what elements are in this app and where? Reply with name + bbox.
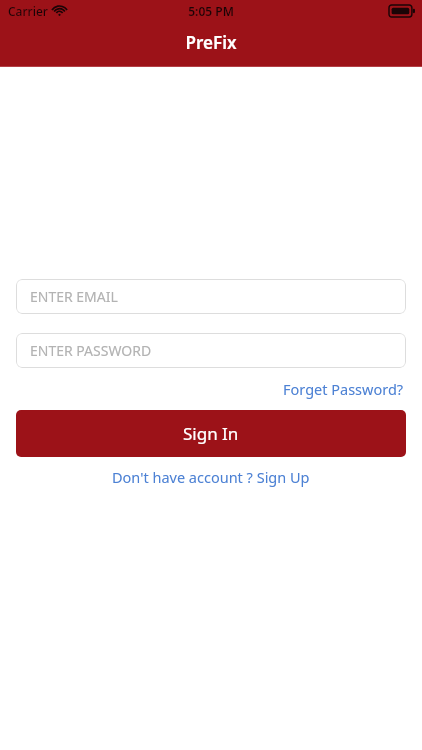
staticText: PreFix: [0, 31, 422, 54]
button[interactable]: ENTER EMAIL: [16, 279, 406, 314]
staticText: Don't have account ? Sign Up: [112, 467, 310, 487]
staticText: Carrier: [8, 3, 48, 19]
button[interactable]: Don't have account ? Sign Up: [106, 464, 316, 490]
staticText: 5:05 PM: [0, 3, 422, 19]
staticText: ENTER PASSWORD: [30, 341, 152, 360]
staticText: Sign In: [183, 422, 239, 445]
button[interactable]: ENTER PASSWORD: [16, 333, 406, 368]
button[interactable]: Sign In: [16, 410, 406, 457]
button[interactable]: Forget Password?: [281, 377, 406, 401]
staticText: Forget Password?: [283, 379, 404, 399]
staticText: ENTER EMAIL: [30, 287, 118, 306]
